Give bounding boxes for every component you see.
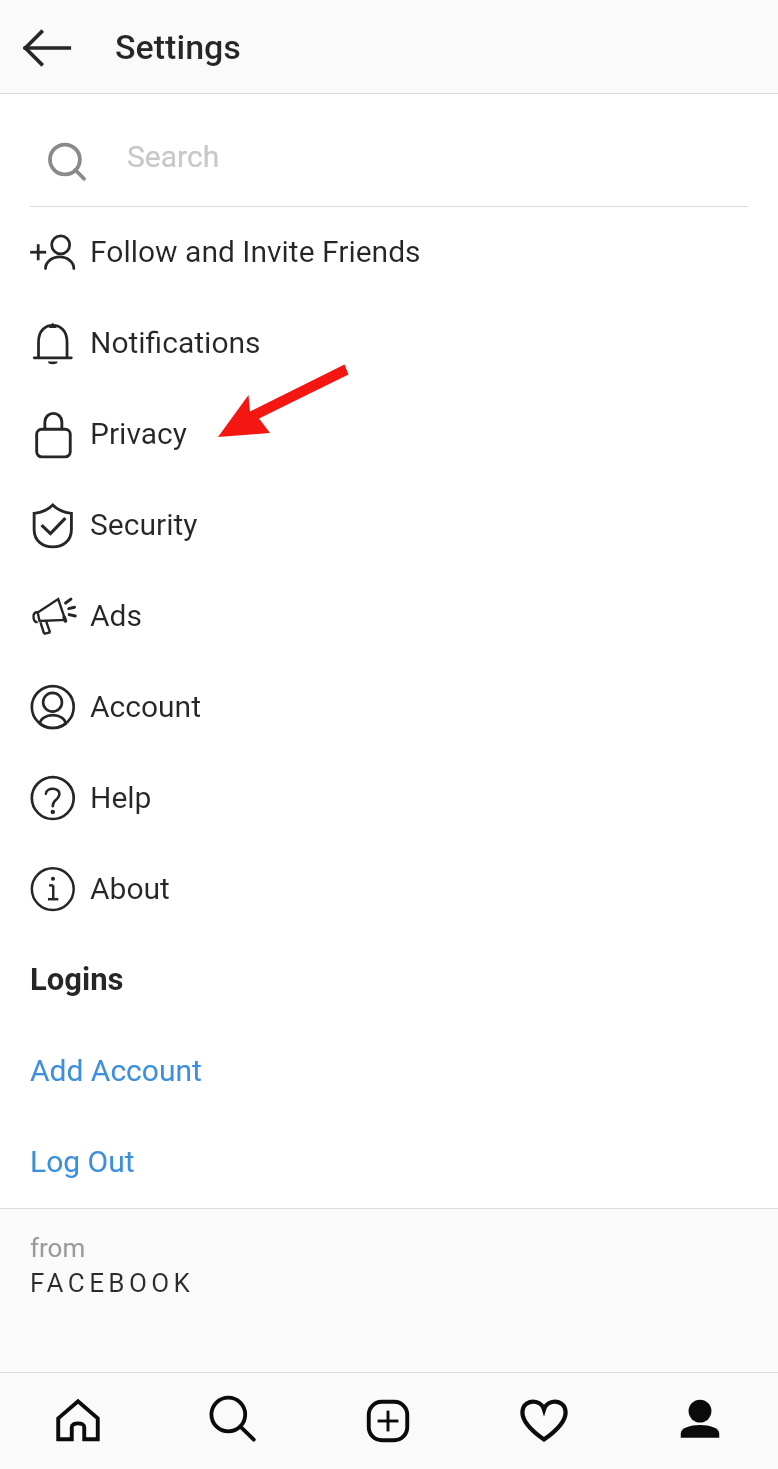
button[interactable]: Add post	[310, 1373, 466, 1469]
button[interactable]: Activity	[466, 1373, 622, 1469]
button[interactable]: Security	[0, 480, 778, 571]
button[interactable]: Home	[0, 1373, 155, 1469]
button[interactable]: Notifications	[0, 298, 778, 389]
staticText: Log Out	[30, 1144, 135, 1179]
staticText: Settings	[115, 27, 241, 67]
staticText: Privacy	[90, 416, 187, 451]
staticText: Account	[90, 689, 202, 724]
button[interactable]: Follow and Invite Friends	[0, 207, 778, 298]
staticText: Security	[90, 507, 198, 542]
staticText: Search	[127, 139, 220, 174]
staticText: Notifications	[90, 325, 261, 360]
staticText: from	[30, 1233, 86, 1263]
staticText: FACEBOOK	[30, 1268, 195, 1298]
button[interactable]: Search	[155, 1373, 310, 1469]
staticText: Help	[90, 780, 152, 815]
button[interactable]: Profile	[622, 1373, 778, 1469]
button[interactable]: Ads	[0, 571, 778, 662]
staticText: Add Account	[30, 1053, 202, 1088]
button[interactable]: Help	[0, 753, 778, 844]
button[interactable]: Privacy	[0, 389, 778, 480]
button[interactable]: Log Out	[0, 1117, 778, 1208]
button[interactable]: Account	[0, 662, 778, 753]
button[interactable]: About	[0, 844, 778, 935]
button[interactable]: Add Account	[0, 1026, 778, 1117]
staticText: Follow and Invite Friends	[90, 234, 421, 269]
button[interactable]: Back	[5, 6, 89, 90]
staticText: About	[90, 871, 170, 906]
staticText: Logins	[30, 961, 124, 997]
staticText: Ads	[90, 598, 142, 633]
